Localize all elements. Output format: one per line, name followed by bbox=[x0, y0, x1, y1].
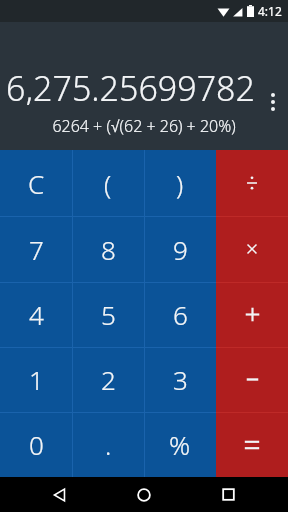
button[interactable]: Multiply bbox=[216, 216, 288, 282]
button[interactable]: Divide bbox=[216, 150, 288, 216]
button[interactable]: 5 bbox=[72, 282, 144, 347]
button[interactable]: % bbox=[144, 412, 216, 477]
button[interactable]: Equals bbox=[216, 412, 288, 477]
button[interactable]: C bbox=[0, 150, 72, 216]
staticText: 5 bbox=[101, 297, 116, 332]
staticText: 4 bbox=[29, 297, 44, 332]
button[interactable]: Home bbox=[120, 477, 168, 512]
staticText: 1 bbox=[29, 362, 44, 397]
staticText: 8 bbox=[101, 232, 116, 267]
button[interactable]: Back bbox=[36, 477, 84, 512]
staticText: 6 bbox=[173, 297, 188, 332]
staticText: ) bbox=[176, 166, 184, 201]
staticText: ( bbox=[104, 166, 112, 201]
button[interactable]: 1 bbox=[0, 347, 72, 412]
button[interactable]: Recent apps bbox=[204, 477, 252, 512]
button[interactable]: 3 bbox=[144, 347, 216, 412]
staticText: 0 bbox=[29, 427, 44, 462]
staticText: 6,275.25699782 bbox=[6, 65, 255, 105]
staticText: % bbox=[169, 427, 191, 462]
staticText: 4:12 bbox=[258, 3, 282, 19]
button[interactable]: . bbox=[72, 412, 144, 477]
staticText: 6264 + (√(62 + 26) + 20%) bbox=[0, 115, 288, 137]
staticText: 2 bbox=[101, 362, 116, 397]
staticText: . bbox=[105, 427, 112, 462]
button[interactable]: 7 bbox=[0, 216, 72, 282]
button[interactable]: 9 bbox=[144, 216, 216, 282]
button[interactable]: ) bbox=[144, 150, 216, 216]
staticText: 9 bbox=[173, 232, 188, 267]
button[interactable]: 0 bbox=[0, 412, 72, 477]
button[interactable]: 6 bbox=[144, 282, 216, 347]
staticText: C bbox=[28, 166, 45, 201]
staticText: 7 bbox=[29, 232, 44, 267]
button[interactable]: Plus bbox=[216, 282, 288, 347]
button[interactable]: More options bbox=[258, 84, 288, 120]
button[interactable]: 8 bbox=[72, 216, 144, 282]
button[interactable]: Minus bbox=[216, 347, 288, 412]
staticText: 3 bbox=[173, 362, 188, 397]
button[interactable]: 2 bbox=[72, 347, 144, 412]
button[interactable]: 4 bbox=[0, 282, 72, 347]
button[interactable]: ( bbox=[72, 150, 144, 216]
